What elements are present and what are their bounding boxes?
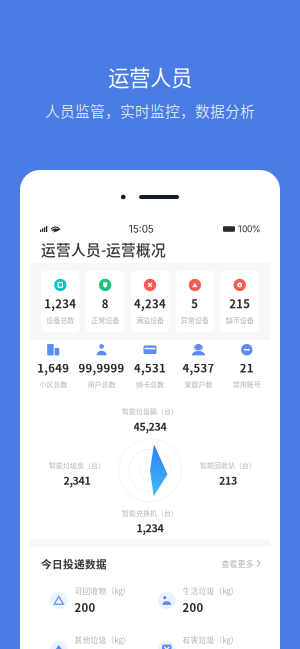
button[interactable]: 有害垃圾（kg） [158,634,266,649]
staticText: 智能垃圾房（台） [49,460,105,470]
staticText: 200 [182,599,203,615]
staticText: 缺币设备 [226,314,254,325]
staticText: 智能回收站（台） [200,460,256,470]
staticText: 异常设备 [181,314,209,325]
button[interactable]: 可回收物（kg） [50,585,158,615]
staticText: 21 [240,359,254,376]
staticText: 其他垃圾（kg） [74,634,130,645]
staticText: 人员监管，实时监控，数据分析 [45,100,255,121]
staticText: 正常设备 [91,314,119,325]
staticText: 200 [74,599,95,615]
staticText: 45,234 [133,418,166,434]
staticText: 家庭户数 [184,379,212,389]
staticText: 15:05 [129,223,154,235]
staticText: 8 [102,295,109,311]
staticText: 215 [229,295,250,311]
staticText: 今日投递数据 [41,556,107,571]
button[interactable]: 99,9999 [77,344,126,389]
staticText: 2,341 [63,472,90,488]
staticText: 用户总数 [88,379,116,389]
staticText: 绑卡总数 [136,379,164,389]
staticText: 满溢设备 [136,314,164,325]
button[interactable]: 1,234 [41,271,80,332]
staticText: 智能垃圾箱（台） [122,406,178,416]
staticText: 设备总数 [46,314,74,325]
staticText: 100% [238,224,261,234]
staticText: 可回收物（kg） [74,585,130,596]
staticText: 查看更多 [221,558,253,569]
staticText: 5 [191,295,198,311]
button[interactable]: 21 [223,344,271,389]
button[interactable]: 4,537 [174,344,223,389]
staticText: 运营人员-运营概况 [41,238,166,260]
staticText: 智能兑换机（台） [122,508,178,518]
staticText: 213 [219,472,237,488]
button[interactable]: 1,649 [29,344,77,389]
staticText: 小区总数 [39,379,67,389]
staticText: 4,234 [134,295,166,311]
staticText: 运营人员 [108,61,192,92]
staticText: 1,234 [136,520,163,535]
staticText: 1,234 [44,295,76,311]
staticText: 4,531 [134,359,166,376]
button[interactable]: 4,234 [131,271,169,332]
staticText: 禁用账号 [233,379,261,389]
button[interactable]: 4,531 [126,344,174,389]
staticText: 1,649 [37,359,69,376]
staticText: 有害垃圾（kg） [182,634,238,645]
staticText: 4,537 [182,359,214,376]
button[interactable]: 查看更多 [221,558,261,569]
button[interactable]: 215 [220,271,259,332]
button[interactable]: 5 [176,271,214,332]
staticText: 生活垃圾（kg） [182,585,238,596]
button[interactable]: 其他垃圾（kg） [50,634,158,649]
staticText: 99,9999 [79,359,125,376]
button[interactable]: 生活垃圾（kg） [158,585,266,615]
button[interactable]: 8 [86,271,124,332]
